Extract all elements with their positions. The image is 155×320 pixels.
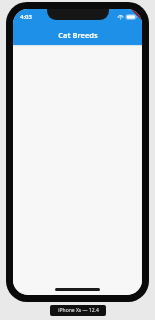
other: Wi-Fi signal bbox=[117, 14, 124, 20]
staticText: Cat Breeds bbox=[58, 30, 98, 40]
other: Battery status bbox=[126, 14, 138, 20]
staticText: iPhone Xs — 12.4 bbox=[58, 307, 99, 314]
staticText: 4:03 bbox=[20, 13, 32, 21]
button[interactable]: Cat Breeds bbox=[13, 24, 142, 45]
